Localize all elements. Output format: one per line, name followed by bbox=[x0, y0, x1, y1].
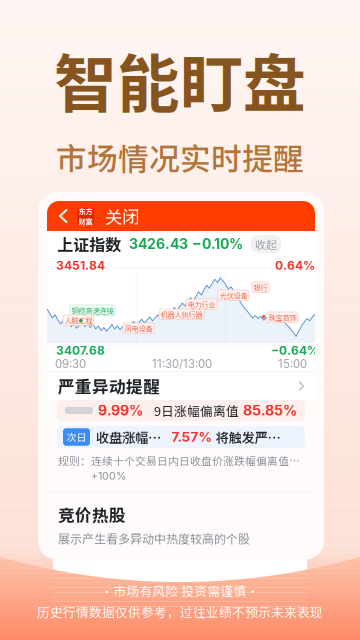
staticText: 收盘涨幅达到 bbox=[96, 427, 168, 447]
staticText: 机器人执行器 bbox=[160, 309, 202, 320]
staticText: 上证指数 bbox=[57, 232, 121, 256]
staticText: 连续十个交易日内日收盘价涨跌幅偏离值累计达到 bbox=[91, 453, 307, 468]
staticText: 9.99% bbox=[98, 402, 143, 419]
staticText: 展示产生看多异动中热度较高的个股 bbox=[58, 529, 250, 547]
staticText: 收起 bbox=[255, 236, 277, 252]
staticText: 关闭 bbox=[105, 203, 139, 229]
staticText: 3426.43 bbox=[129, 235, 188, 252]
staticText: 竞价热股 bbox=[58, 502, 126, 526]
staticText: 智能盯盘 bbox=[54, 34, 306, 125]
staticText: 电力行业 bbox=[187, 299, 215, 310]
staticText: 铜缆高速连接 bbox=[71, 305, 113, 316]
staticText: 11:30/13:00 bbox=[152, 357, 212, 371]
staticText: 7.57% bbox=[171, 429, 212, 445]
button[interactable]: 严重异动提醒 bbox=[47, 372, 315, 400]
staticText: +100% bbox=[91, 469, 126, 482]
staticText: 将触发严重异动 bbox=[215, 427, 291, 447]
staticText: 历史行情数据仅供参考，过往业绩不预示未来表现 bbox=[37, 603, 323, 621]
staticText: 9日涨幅偏离值 bbox=[154, 401, 239, 420]
staticText: 人脑工程 bbox=[64, 315, 92, 326]
staticText: 3407.68 bbox=[56, 343, 105, 357]
staticText: 85.85% bbox=[243, 402, 297, 419]
staticText: 3451.84 bbox=[56, 258, 105, 272]
staticText: 15:00 bbox=[278, 357, 307, 371]
staticText: ·市场有风险 投资需谨慎· bbox=[100, 581, 259, 600]
staticText: 珠宝首饰 bbox=[268, 312, 296, 323]
staticText: 严重异动提醒 bbox=[58, 374, 160, 398]
staticText: 风电设备 bbox=[124, 323, 152, 334]
staticText: 市场情况实时提醒 bbox=[56, 135, 304, 179]
staticText: 财富 bbox=[78, 216, 92, 227]
staticText: 光伏设备 bbox=[219, 290, 247, 301]
staticText: −0.64% bbox=[271, 343, 319, 357]
staticText: 规则： bbox=[58, 453, 91, 468]
staticText: −0.10% bbox=[192, 235, 243, 252]
staticText: 次日 bbox=[66, 430, 86, 444]
staticText: 银行 bbox=[253, 282, 267, 293]
staticText: 09:30 bbox=[55, 357, 86, 371]
staticText: 0.64% bbox=[275, 258, 315, 272]
button[interactable]: 东方 bbox=[47, 201, 315, 231]
staticText: 东方 bbox=[78, 205, 92, 216]
